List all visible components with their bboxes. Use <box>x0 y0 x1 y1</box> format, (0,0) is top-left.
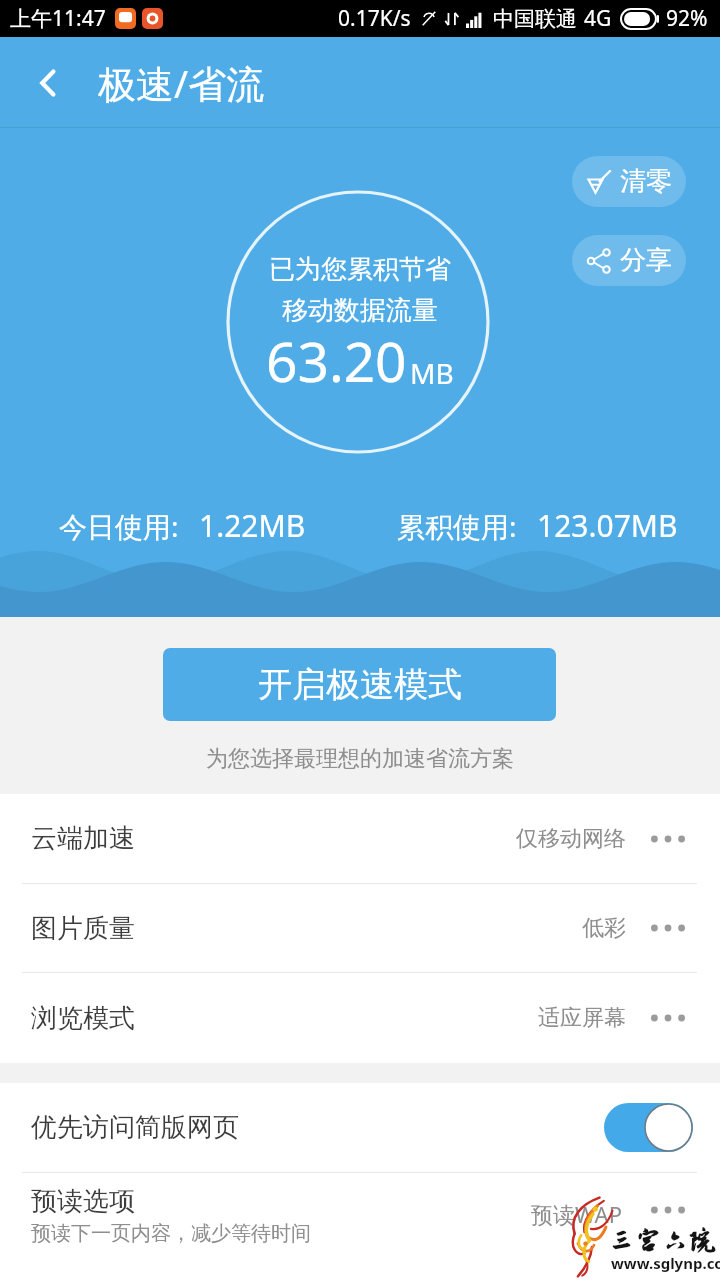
button[interactable]: 浏览模式 <box>0 973 720 1063</box>
staticText: 累积使用: <box>397 507 517 545</box>
staticText: 123.07MB <box>537 505 678 546</box>
staticText: 中国联通 <box>493 6 577 32</box>
button[interactable]: Back <box>0 37 98 128</box>
staticText: 为您选择最理想的加速省流方案 <box>206 745 514 773</box>
staticText: 上午11:47 <box>10 4 106 33</box>
staticText: 低彩 <box>582 914 626 942</box>
staticText: 三宫六院 <box>608 1226 716 1256</box>
staticText: 适应屏幕 <box>538 1004 626 1032</box>
staticText: 预读WAP <box>531 1199 622 1229</box>
staticText: 云端加速 <box>31 822 135 855</box>
staticText: 92% <box>666 4 708 33</box>
staticText: 浏览模式 <box>31 1002 135 1035</box>
staticText: MB <box>410 354 454 392</box>
staticText: 移动数据流量 <box>282 294 438 327</box>
staticText: 1.22MB <box>199 505 306 546</box>
staticText: 4G <box>584 4 612 33</box>
staticText: 开启极速模式 <box>258 663 462 706</box>
button[interactable]: 分享 <box>572 235 686 286</box>
button[interactable]: 开启极速模式 <box>163 648 556 721</box>
staticText: 已为您累积节省 <box>269 253 451 286</box>
staticText: 优先访问简版网页 <box>31 1111 239 1144</box>
staticText: www.sglynp.com <box>611 1253 720 1273</box>
button[interactable]: 清零 <box>572 156 686 207</box>
button[interactable]: Toggle simplified pages <box>604 1103 693 1152</box>
button[interactable]: 图片质量 <box>0 884 720 972</box>
staticText: 今日使用: <box>59 507 179 545</box>
button[interactable]: 云端加速 <box>0 794 720 883</box>
staticText: 预读下一页内容，减少等待时间 <box>31 1221 311 1246</box>
staticText: 极速/省流 <box>98 57 265 109</box>
button[interactable]: 预读选项 <box>0 1173 720 1280</box>
staticText: 清零 <box>620 165 672 198</box>
staticText: 预读选项 <box>31 1185 135 1218</box>
button[interactable]: 优先访问简版网页 <box>0 1083 720 1172</box>
staticText: 0.17K/s <box>338 4 411 33</box>
staticText: 63.20 <box>266 323 407 398</box>
staticText: 分享 <box>620 244 672 277</box>
staticText: 图片质量 <box>31 912 135 945</box>
staticText: 仅移动网络 <box>516 825 626 853</box>
